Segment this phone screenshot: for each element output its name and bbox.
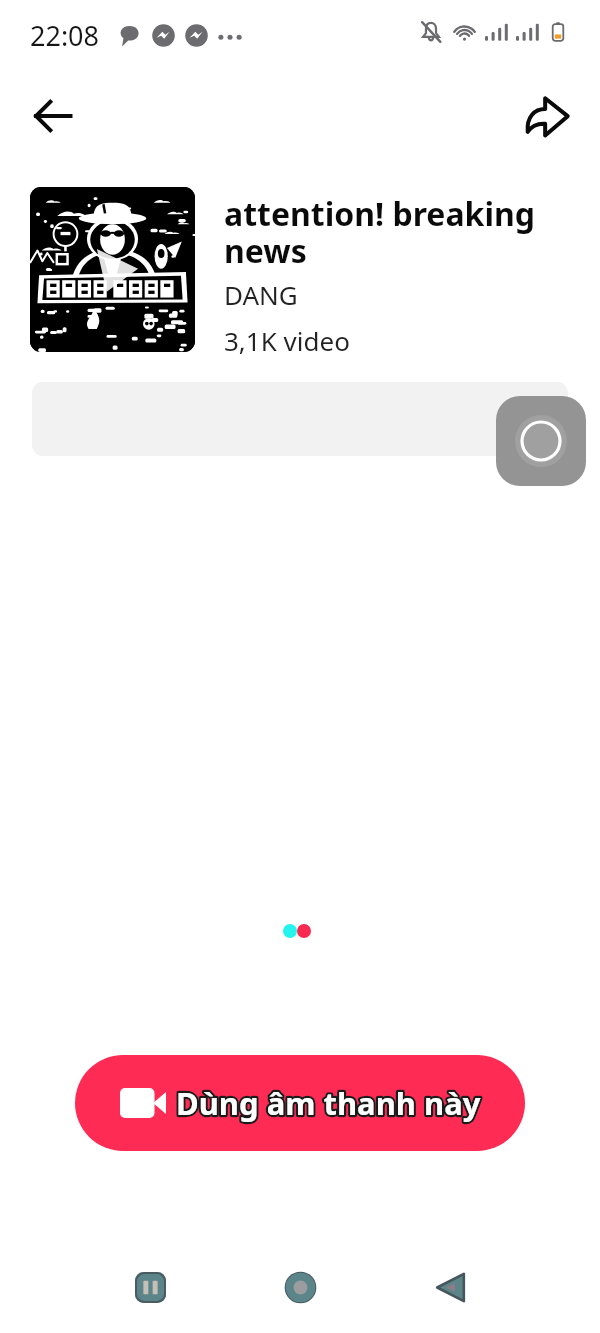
button[interactable]: Dùng âm thanh này bbox=[75, 1055, 525, 1151]
staticText: Dùng âm thanh này bbox=[176, 1082, 481, 1124]
button[interactable]: Share bbox=[519, 90, 575, 146]
staticText: attention! breaking news bbox=[224, 192, 549, 272]
button[interactable]: Recents bbox=[122, 1259, 178, 1315]
button[interactable]: Home bbox=[272, 1259, 328, 1315]
button[interactable]: Play sound cover art bbox=[30, 187, 195, 352]
staticText: DANG bbox=[224, 277, 298, 312]
button[interactable]: Back bbox=[422, 1259, 478, 1315]
staticText: Dùng âm thanh này bbox=[176, 1082, 481, 1124]
staticText: 3,1K video bbox=[224, 323, 350, 358]
button[interactable]: Record bbox=[496, 396, 586, 486]
staticText: 22:08 bbox=[30, 17, 100, 54]
button[interactable]: Back bbox=[24, 88, 80, 144]
